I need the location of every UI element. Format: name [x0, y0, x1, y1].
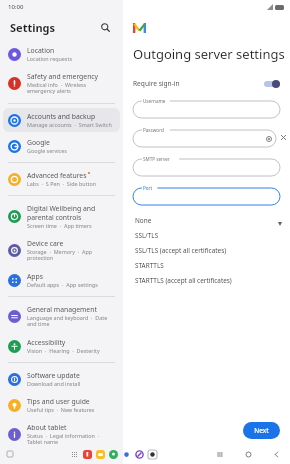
button[interactable]: Expand security type: [275, 219, 285, 229]
staticText: SMTP server: [143, 156, 170, 162]
staticText: Device care: [27, 239, 64, 248]
staticText: Port: [143, 185, 153, 191]
staticText: SSL/TLS: [135, 231, 159, 240]
staticText: Medical info · Wireless emergency alerts: [27, 81, 115, 95]
button[interactable]: SSL/TLS (accept all certificates): [129, 243, 275, 258]
staticText: Tips and user guide: [27, 397, 90, 406]
staticText: About tablet: [27, 423, 67, 432]
staticText: Outgoing server settings: [133, 45, 285, 63]
button[interactable]: All apps: [70, 450, 78, 458]
button[interactable]: App: [83, 450, 92, 459]
button[interactable]: Device care: [3, 235, 120, 266]
staticText: Password: [143, 127, 164, 133]
staticText: Security type: [134, 214, 167, 221]
staticText: Advanced features: [27, 171, 87, 180]
button[interactable]: SMTP server: [133, 156, 280, 176]
staticText: Software update: [27, 371, 80, 380]
button[interactable]: Tips and user guide: [3, 393, 120, 417]
staticText: Accessibility: [27, 338, 66, 347]
staticText: Language and keyboard · Date and time: [27, 314, 115, 328]
button[interactable]: Next: [243, 422, 280, 439]
button[interactable]: Location: [3, 42, 120, 66]
staticText: Screen time · App timers: [27, 222, 92, 229]
button[interactable]: Back: [270, 448, 282, 460]
staticText: Location requests: [27, 55, 72, 62]
staticText: Google: [27, 138, 50, 147]
button[interactable]: App: [135, 450, 144, 459]
button[interactable]: Digital Wellbeing and parental controls: [3, 200, 120, 233]
button[interactable]: Safety and emergency: [3, 68, 120, 99]
button[interactable]: STARTTLS: [129, 258, 275, 273]
button[interactable]: App: [109, 450, 118, 459]
staticText: Accounts and backup: [27, 112, 96, 121]
staticText: Next: [254, 426, 269, 435]
button[interactable]: Advanced features: [3, 167, 120, 191]
staticText: Google services: [27, 147, 67, 154]
button[interactable]: About tablet: [3, 419, 120, 450]
button[interactable]: Home: [242, 448, 254, 460]
staticText: Username: [143, 98, 166, 104]
button[interactable]: Require sign-in: [123, 77, 290, 90]
staticText: Safety and emergency: [27, 72, 99, 81]
button[interactable]: Clear password: [276, 129, 290, 145]
staticText: Digital Wellbeing and parental controls: [27, 204, 115, 222]
staticText: Download and install: [27, 380, 81, 387]
button[interactable]: Google: [3, 134, 120, 158]
button[interactable]: Port: [133, 185, 280, 205]
staticText: Labs · S Pen · Side button: [27, 180, 97, 187]
button[interactable]: Apps: [3, 268, 120, 292]
button[interactable]: Accounts and backup: [3, 108, 120, 132]
staticText: STARTTLS (accept all certificates): [135, 276, 232, 285]
button[interactable]: Password: [133, 127, 276, 147]
button[interactable]: App: [122, 450, 131, 459]
button[interactable]: Search settings: [97, 19, 113, 35]
button[interactable]: General management: [3, 301, 120, 332]
button[interactable]: SSL/TLS: [129, 228, 275, 243]
staticText: Status · Legal information · Tablet name: [27, 432, 115, 446]
staticText: Apps: [27, 272, 43, 281]
staticText: Vision · Hearing · Dexterity: [27, 347, 100, 354]
button[interactable]: STARTTLS (accept all certificates): [129, 273, 275, 288]
button[interactable]: Accessibility: [3, 334, 120, 358]
staticText: Location: [27, 46, 55, 55]
button[interactable]: Screenshot: [6, 450, 14, 458]
staticText: None: [135, 216, 152, 225]
staticText: STARTTLS: [135, 261, 164, 270]
button[interactable]: Settings app: [148, 450, 157, 459]
staticText: Manage accounts · Smart Switch: [27, 121, 112, 128]
button[interactable]: Username: [133, 98, 280, 118]
staticText: Useful tips · New features: [27, 406, 95, 413]
staticText: General management: [27, 305, 97, 314]
staticText: Default apps · App settings: [27, 281, 98, 288]
staticText: Require sign-in: [133, 79, 180, 88]
button[interactable]: None: [129, 213, 275, 228]
button[interactable]: App: [96, 450, 105, 459]
staticText: 10:00: [8, 3, 24, 11]
staticText: Storage · Memory · App protection: [27, 248, 115, 262]
staticText: SSL/TLS (accept all certificates): [135, 246, 227, 255]
button[interactable]: Software update: [3, 367, 120, 391]
staticText: Settings: [10, 20, 56, 35]
button[interactable]: Recents: [214, 448, 226, 460]
